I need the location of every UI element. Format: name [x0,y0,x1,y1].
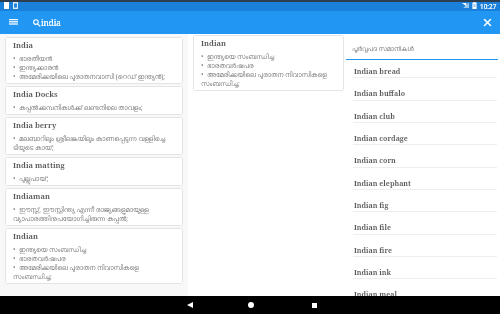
staticText: • അമേരിക്കയിലെ പുരാതന നിവാസികളെ സംബന്ധിച… [201,70,339,88]
button[interactable]: Indiaman [5,188,183,226]
staticText: Indiaman [13,191,50,201]
staticText: Indian fig [354,200,389,210]
button[interactable]: India matting [5,157,183,186]
staticText: Indian file [354,222,391,232]
button[interactable]: Indian cordage [344,123,500,145]
staticText: Indian ink [354,267,392,277]
button[interactable]: Indian fire [344,235,500,257]
button[interactable]: Open navigation menu [0,11,28,34]
button[interactable]: Indian meal [344,279,500,301]
staticText: Indian [201,38,227,48]
staticText: • അമേരിക്കയിലെ പുരാതനവാസി (റെഡ് ഇന്ത്യൻ)… [13,72,166,81]
button[interactable]: Indian corn [344,145,500,167]
staticText: 10:27 [480,2,497,11]
staticText: • ഇന്ത്യക്കാരൻ [13,63,59,72]
staticText: • ഇന്ത്യയെ സംബന്ധിച്ച [201,52,275,61]
staticText: Indian [13,231,39,241]
staticText: • കപ്പൽക്കമ്പനികൾക്ക് ലണ്ടനിലെ താവളം; [13,103,143,112]
staticText: India [13,40,34,50]
staticText: Indian corn [354,155,396,165]
button[interactable]: Indian club [344,101,500,123]
staticText: Indian buffalo [354,88,406,98]
staticText: Indian bread [354,66,401,76]
staticText: • മലബാറിലും ശ്രീലങ്കയിലും കാണപ്പെടുന്ന വ… [13,134,178,152]
staticText: • പുല്ലുപായ്; [13,174,49,183]
staticText: Indian elephant [354,178,411,188]
button[interactable]: Indian elephant [344,168,500,190]
button[interactable]: India Docks [5,86,183,115]
staticText: • ഭാരതവർഷപര [13,254,66,263]
staticText: • ഈസ്റ്റ്, ഈസ്റ്റിന്ത്യ എന്നീ രാജ്യങ്ങളു… [13,205,178,223]
staticText: പൂർവ്വപദ സമാനികൾ [352,44,414,53]
staticText: Indian club [354,111,395,121]
staticText: • ഭാരതീയൻ [13,54,52,63]
staticText: Indian fire [354,245,393,255]
staticText: • ഇന്ത്യയെ സംബന്ധിച്ച [13,245,87,254]
button[interactable]: Clear search [475,11,499,34]
staticText: India Docks [13,89,58,99]
button[interactable]: Indian fig [344,190,500,212]
button[interactable]: India berry [5,117,183,155]
staticText: • ഭാരതവർഷപര [201,61,254,70]
button[interactable]: Recent apps [282,296,346,314]
button[interactable]: Indian buffalo [344,78,500,100]
staticText: Indian cordage [354,133,408,143]
staticText: India matting [13,160,65,170]
staticText: Indian meal [354,289,398,299]
button[interactable]: India [5,37,183,84]
staticText: • അമേരിക്കയിലെ പുരാതന നിവാസികളെ സംബന്ധിച… [13,263,178,281]
button[interactable]: Indian [5,228,183,284]
button[interactable]: Indian file [344,212,500,234]
button[interactable]: Back [159,296,220,314]
button[interactable]: Indian bread [344,56,500,78]
button[interactable]: Indian [193,35,344,91]
staticText: india [41,17,61,28]
staticText: India berry [13,120,57,130]
button[interactable]: Home [220,296,282,314]
button[interactable]: Indian ink [344,257,500,279]
